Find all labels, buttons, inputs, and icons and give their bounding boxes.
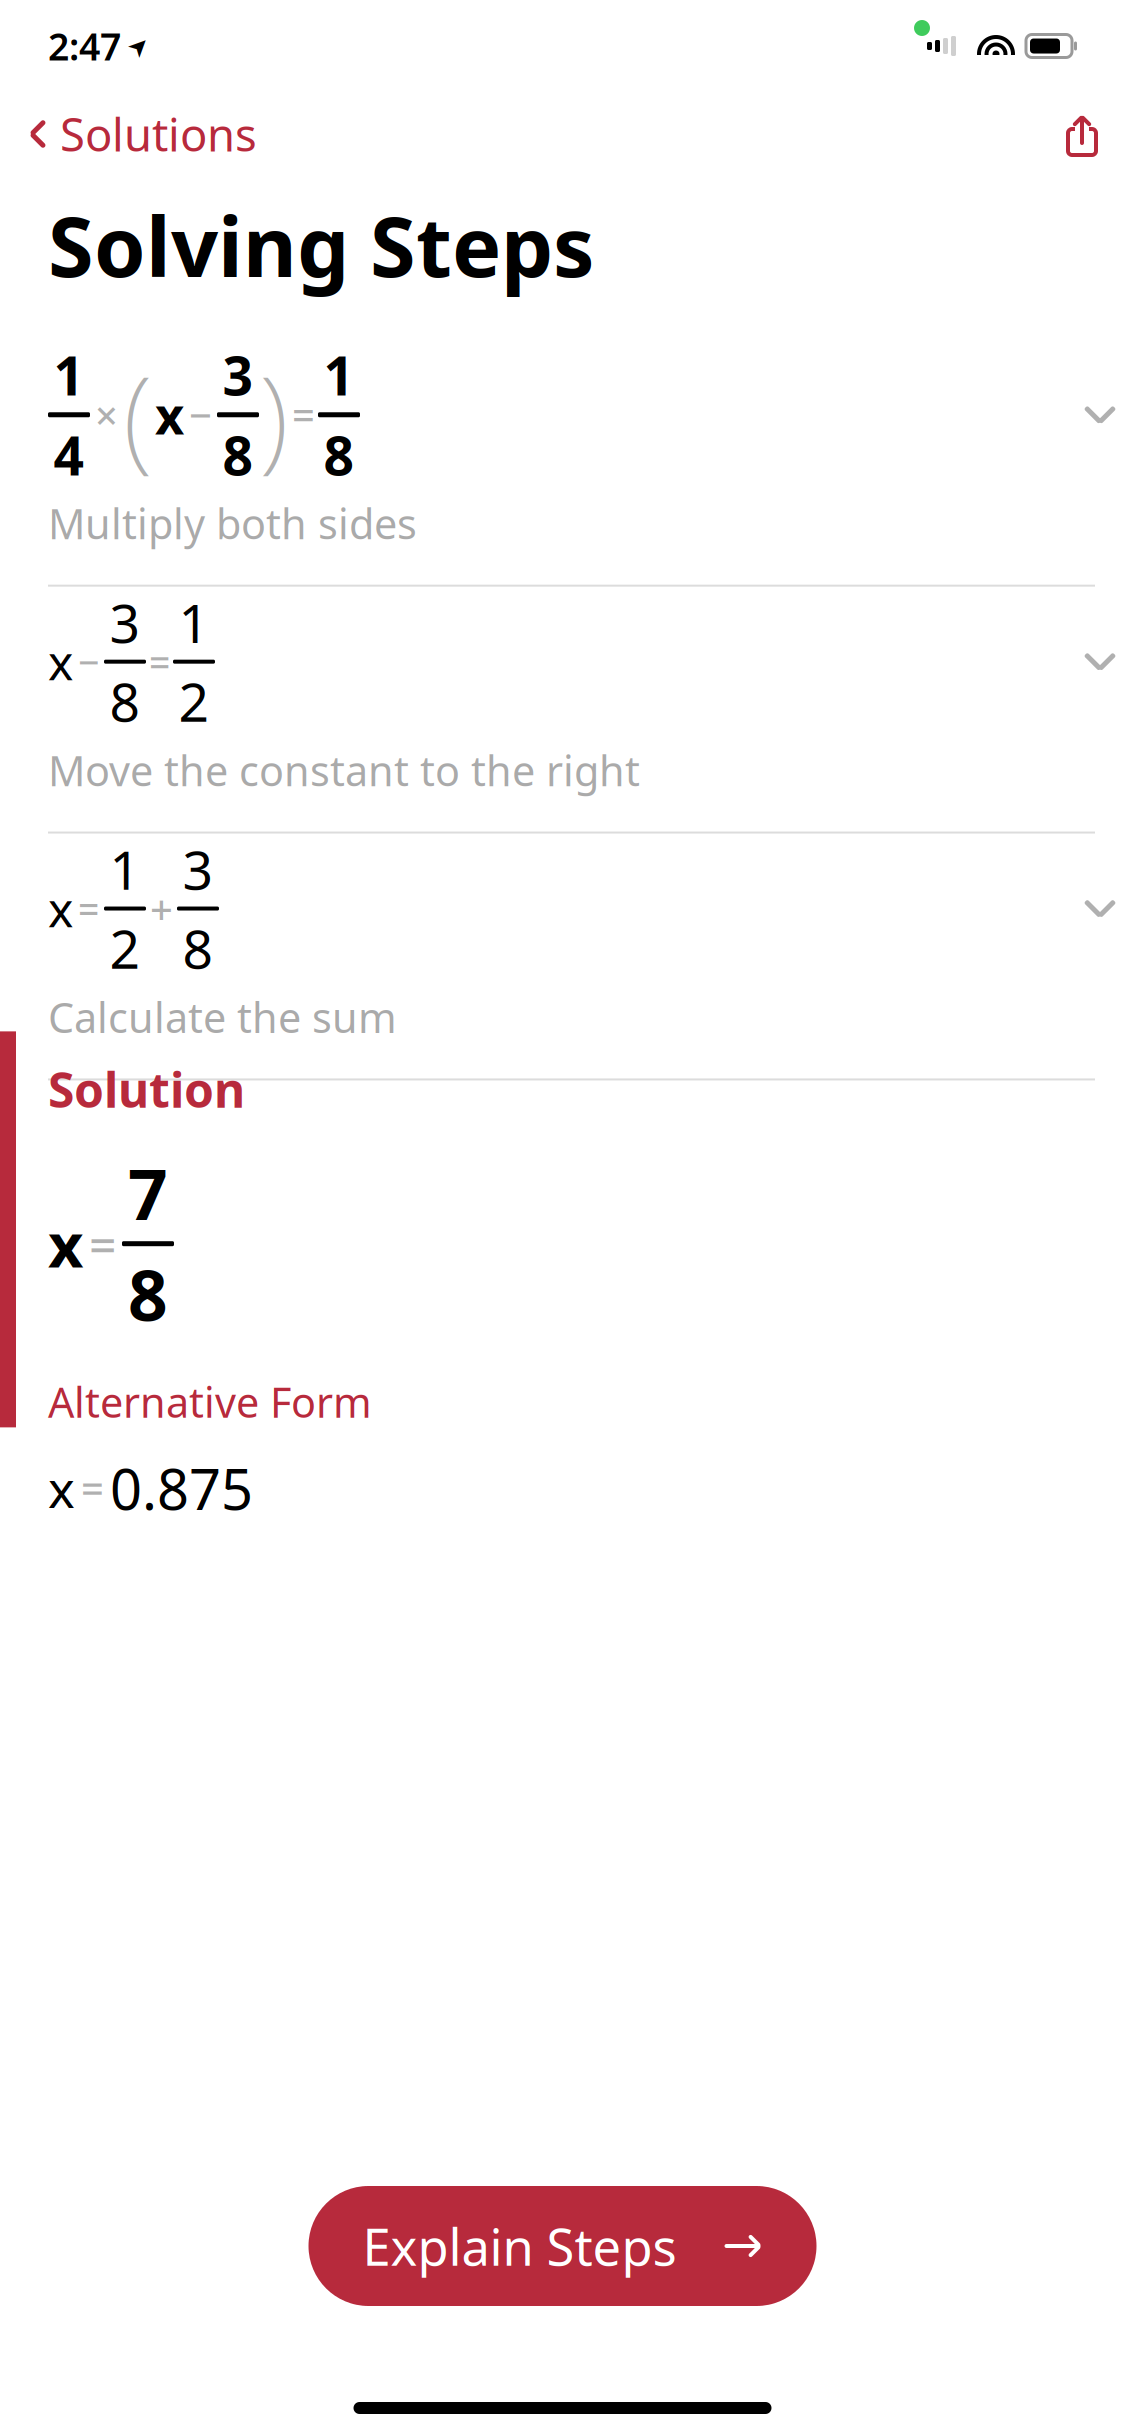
button[interactable]: x	[0, 587, 1125, 834]
staticText: ➤	[128, 32, 149, 60]
staticText: 8	[222, 419, 253, 490]
staticText: +	[150, 882, 173, 935]
staticText: =	[78, 884, 99, 933]
staticText: 8	[182, 913, 213, 983]
staticText: Move the constant to the right	[48, 743, 640, 798]
staticText: 3	[222, 339, 253, 410]
staticText: 2	[109, 913, 140, 983]
staticText: 2	[178, 666, 209, 736]
staticText: )	[259, 340, 289, 489]
staticText: 1	[323, 339, 354, 410]
staticText: 1	[178, 587, 209, 658]
staticText: 3	[109, 587, 140, 658]
staticText: x	[48, 1203, 83, 1284]
staticText: ×	[95, 388, 118, 441]
staticText: −	[189, 388, 212, 441]
staticText: =	[81, 1462, 104, 1515]
staticText: −	[78, 637, 99, 686]
staticText: 8	[109, 666, 140, 736]
staticText: 7	[128, 1147, 168, 1239]
staticText: 2:47	[48, 21, 121, 71]
button[interactable]: 1	[0, 340, 1125, 587]
staticText: =	[292, 388, 315, 441]
staticText: Explain Steps	[362, 2212, 676, 2280]
staticText: Calculate the sum	[48, 990, 397, 1044]
staticText: x	[48, 630, 73, 693]
staticText: x	[48, 1455, 75, 1522]
button[interactable]: Explain Steps	[308, 2186, 816, 2306]
staticText: Solution	[48, 1057, 245, 1121]
staticText: =	[89, 1212, 116, 1275]
button[interactable]: Share	[1039, 108, 1125, 160]
staticText: Alternative Form	[48, 1374, 372, 1429]
button[interactable]: Solutions	[0, 94, 257, 174]
staticText: =	[149, 637, 170, 686]
staticText: x	[155, 381, 184, 448]
staticText: (	[123, 340, 153, 489]
staticText: Multiply both sides	[48, 496, 417, 551]
staticText: 1	[109, 834, 140, 904]
staticText: 1	[53, 339, 84, 410]
staticText: 4	[53, 419, 84, 490]
staticText: 3	[182, 834, 213, 904]
staticText: Solutions	[60, 104, 257, 164]
staticText: x	[48, 877, 73, 940]
staticText: 0.875	[110, 1451, 253, 1525]
staticText: 8	[128, 1248, 168, 1340]
staticText: 8	[323, 419, 354, 490]
button[interactable]: x	[0, 834, 1125, 1080]
staticText: Solving Steps	[48, 190, 594, 300]
